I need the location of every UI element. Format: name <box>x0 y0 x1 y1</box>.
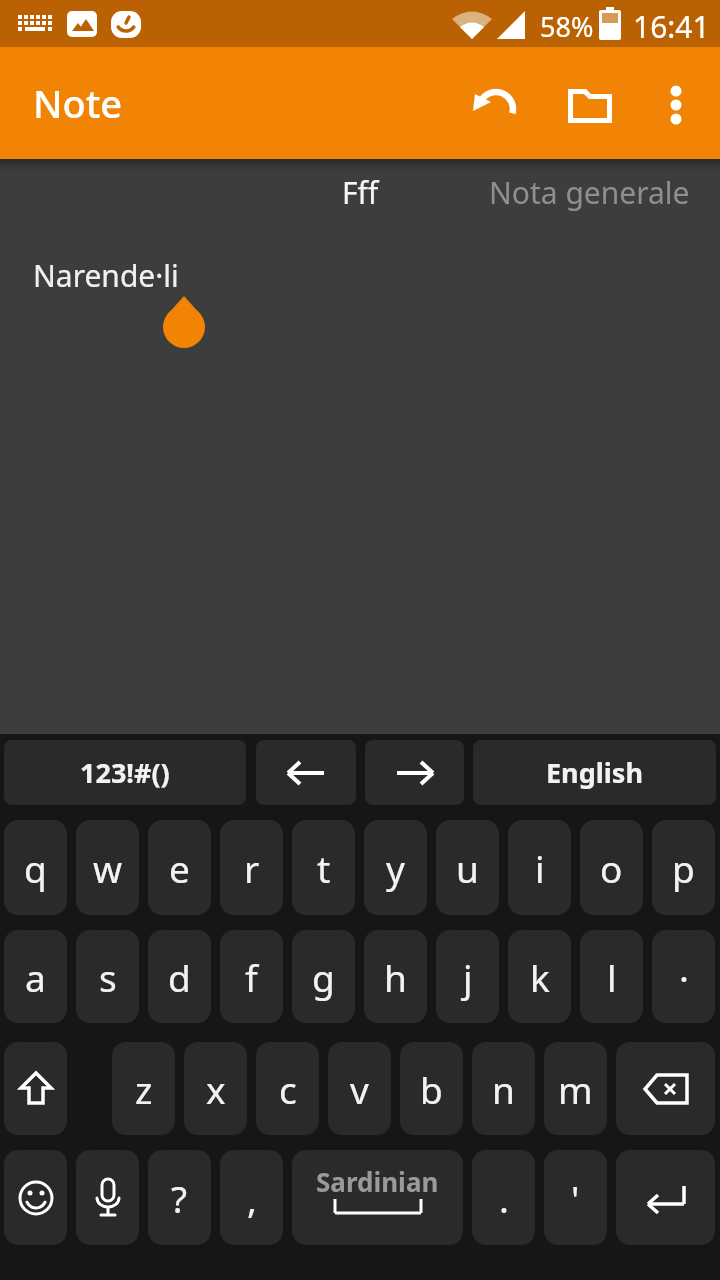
staticText: e <box>169 843 190 893</box>
button[interactable]: Sardinian <box>292 1150 463 1245</box>
button[interactable]: w <box>76 820 139 915</box>
button[interactable]: c <box>256 1042 319 1135</box>
staticText: ' <box>571 1173 580 1223</box>
button[interactable]: . <box>472 1150 535 1245</box>
staticText: h <box>384 952 407 1002</box>
button[interactable] <box>616 1150 715 1245</box>
button[interactable] <box>554 75 626 137</box>
button[interactable]: Fff <box>342 172 379 213</box>
button[interactable]: m <box>544 1042 607 1135</box>
button[interactable]: e <box>148 820 211 915</box>
staticText: k <box>530 952 550 1002</box>
button[interactable]: a <box>4 930 67 1023</box>
button[interactable]: ? <box>148 1150 211 1245</box>
button[interactable]: p <box>652 820 715 915</box>
button[interactable] <box>4 1150 67 1245</box>
staticText: , <box>247 1173 257 1223</box>
staticText: p <box>672 843 695 893</box>
button[interactable]: l <box>580 930 643 1023</box>
button[interactable]: v <box>328 1042 391 1135</box>
button[interactable] <box>460 75 532 137</box>
button[interactable]: j <box>436 930 499 1023</box>
button[interactable]: · <box>652 930 715 1023</box>
staticText: j <box>463 952 473 1002</box>
button[interactable]: ' <box>544 1150 607 1245</box>
button[interactable]: y <box>364 820 427 915</box>
staticText: o <box>600 843 623 893</box>
staticText: w <box>93 843 123 893</box>
button[interactable] <box>4 1042 67 1135</box>
staticText: 123!#() <box>80 754 170 791</box>
staticText: c <box>279 1064 297 1114</box>
staticText: x <box>206 1064 226 1114</box>
staticText: r <box>244 843 260 893</box>
staticText: 58% <box>540 8 594 45</box>
button[interactable]: u <box>436 820 499 915</box>
staticText: q <box>24 843 47 893</box>
staticText: · <box>679 952 689 1002</box>
staticText: Narende·li <box>33 255 179 296</box>
staticText: t <box>317 843 331 893</box>
button[interactable]: x <box>184 1042 247 1135</box>
button[interactable]: h <box>364 930 427 1023</box>
button[interactable]: b <box>400 1042 463 1135</box>
staticText: ? <box>171 1173 188 1223</box>
staticText: v <box>350 1064 369 1114</box>
button[interactable]: s <box>76 930 139 1023</box>
button[interactable]: q <box>4 820 67 915</box>
staticText: Sardinian <box>316 1164 439 1199</box>
button[interactable]: , <box>220 1150 283 1245</box>
button[interactable] <box>76 1150 139 1245</box>
button[interactable]: g <box>292 930 355 1023</box>
button[interactable]: o <box>580 820 643 915</box>
button[interactable] <box>648 75 704 137</box>
staticText: 16:41 <box>633 6 710 47</box>
button[interactable]: 123!#() <box>4 740 246 805</box>
button[interactable] <box>616 1042 715 1135</box>
staticText: Note <box>33 77 123 129</box>
button[interactable]: z <box>112 1042 175 1135</box>
staticText: u <box>456 843 479 893</box>
button[interactable]: t <box>292 820 355 915</box>
staticText: f <box>245 952 258 1002</box>
staticText: d <box>168 952 191 1002</box>
staticText: l <box>607 952 617 1002</box>
button[interactable]: k <box>508 930 571 1023</box>
staticText: b <box>420 1064 443 1114</box>
button[interactable]: f <box>220 930 283 1023</box>
staticText: i <box>535 843 545 893</box>
staticText: English <box>546 754 643 791</box>
button[interactable]: r <box>220 820 283 915</box>
staticText: a <box>25 952 46 1002</box>
button[interactable]: i <box>508 820 571 915</box>
button[interactable]: English <box>473 740 716 805</box>
staticText: z <box>135 1064 153 1114</box>
button[interactable]: d <box>148 930 211 1023</box>
button[interactable]: Nota generale <box>489 172 690 213</box>
staticText: g <box>312 952 335 1002</box>
button[interactable]: n <box>472 1042 535 1135</box>
staticText: n <box>492 1064 515 1114</box>
staticText: y <box>386 843 405 893</box>
button[interactable] <box>365 740 464 805</box>
staticText: m <box>558 1064 593 1114</box>
staticText: . <box>499 1173 509 1223</box>
button[interactable] <box>256 740 356 805</box>
staticText: s <box>99 952 117 1002</box>
